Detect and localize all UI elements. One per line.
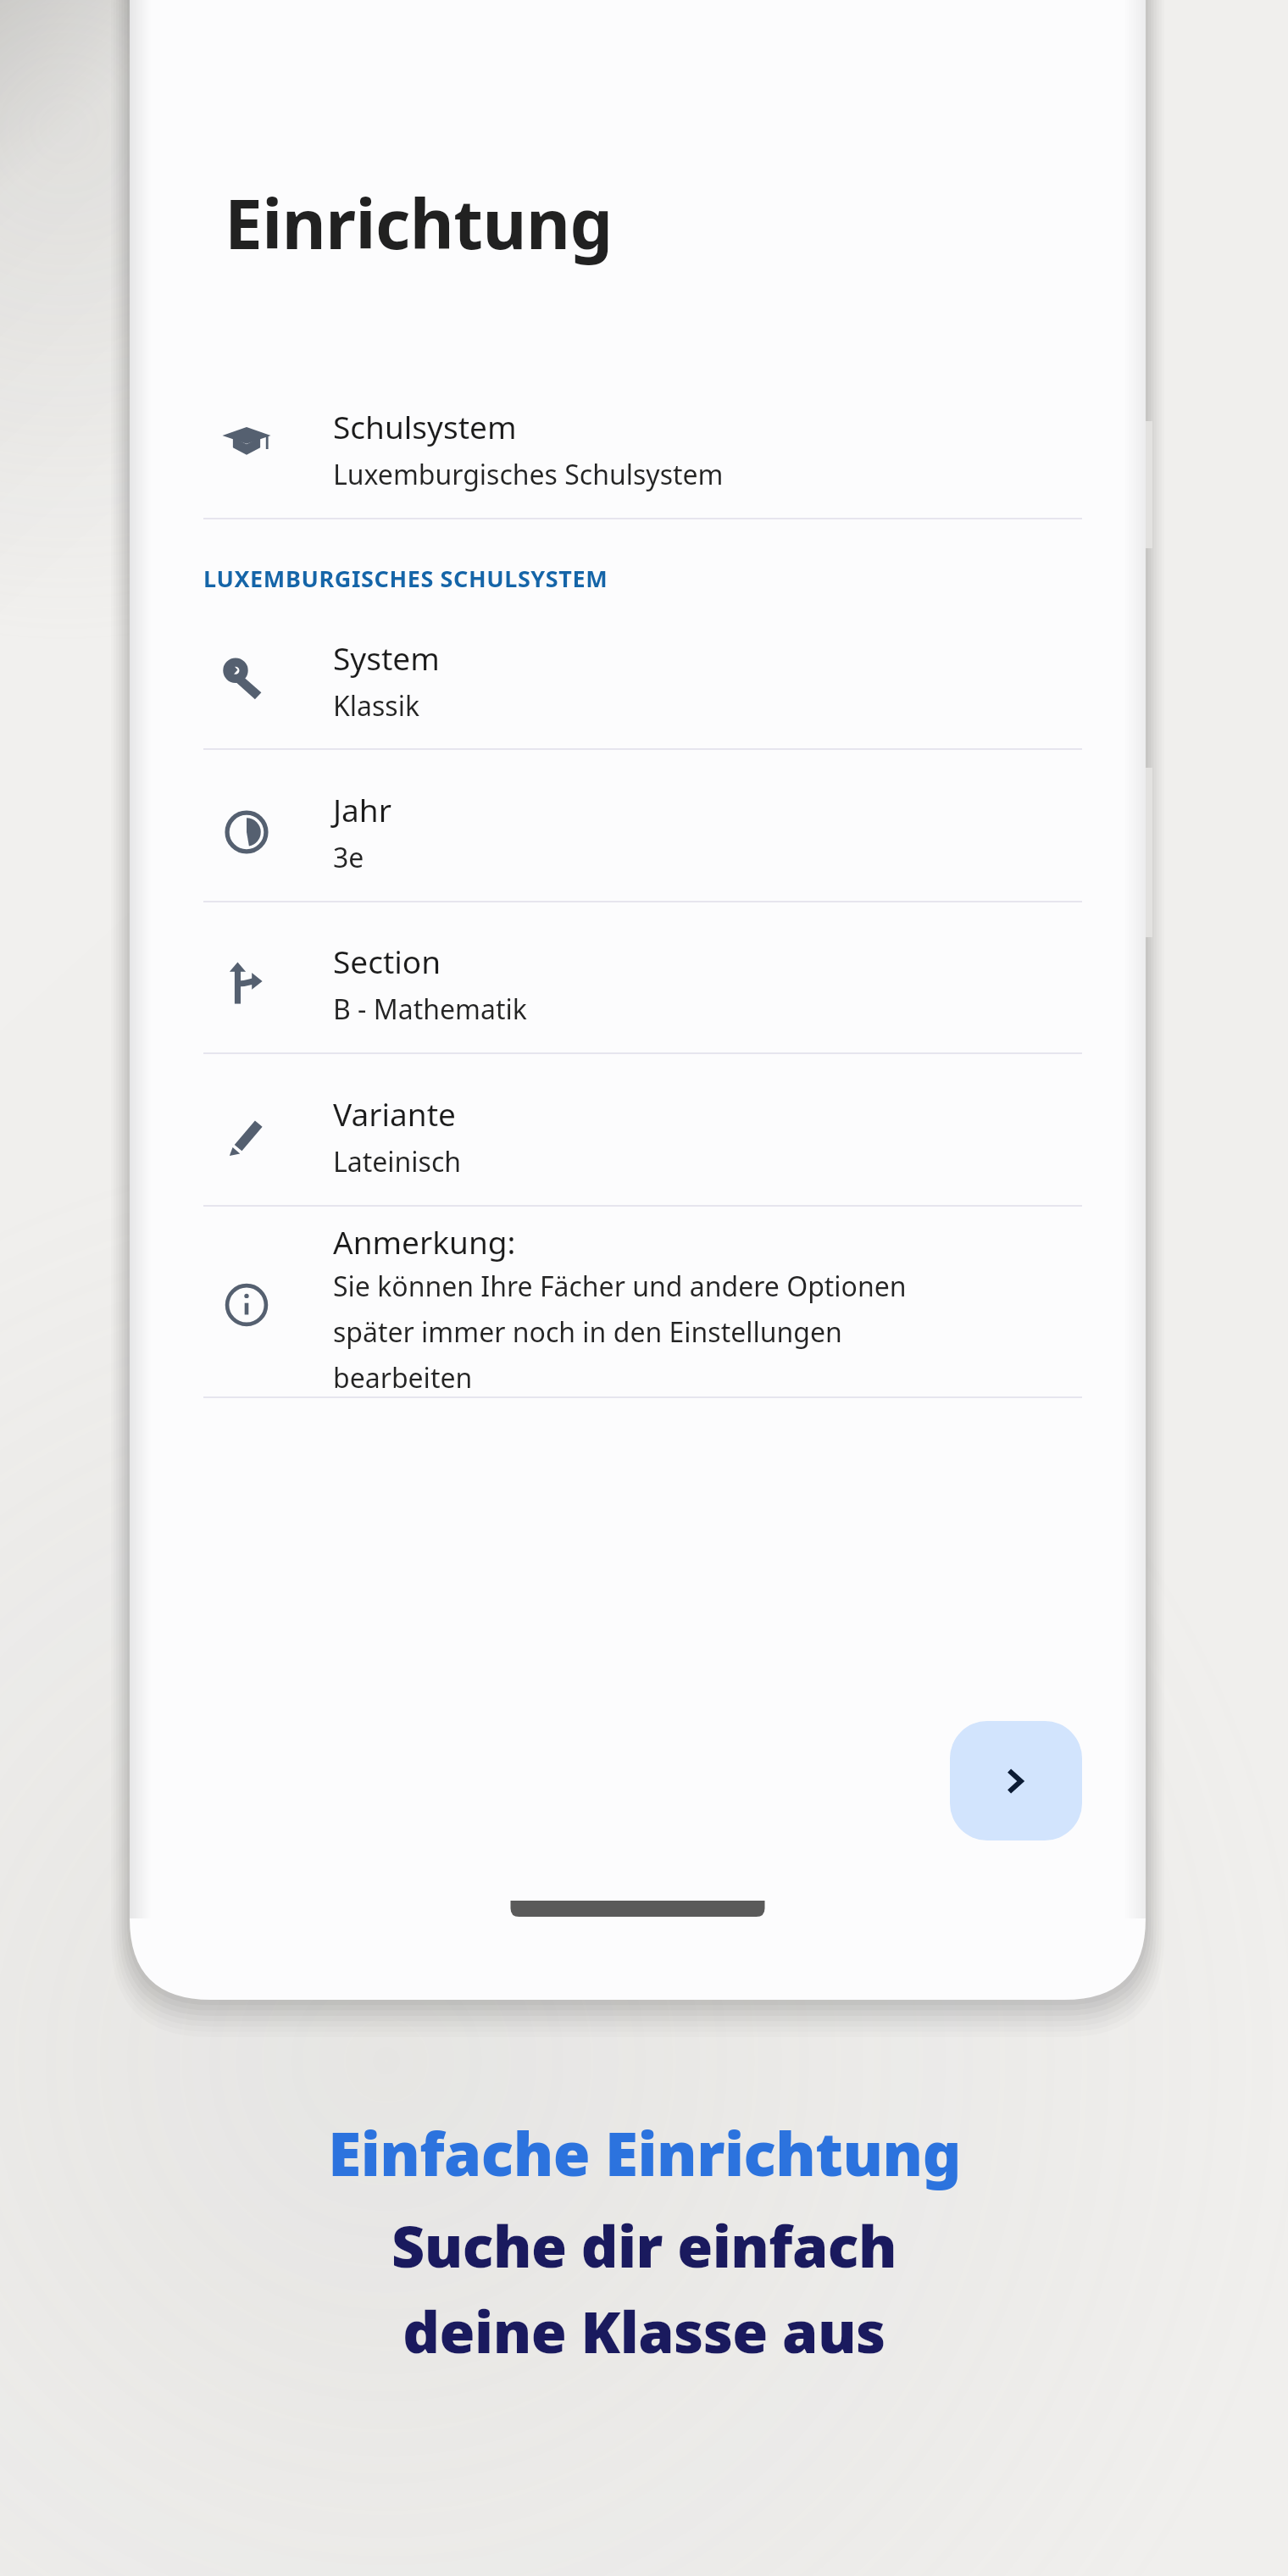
staticText: Variante xyxy=(333,1092,456,1135)
button[interactable]: Anmerkung: xyxy=(203,1220,1082,1390)
staticText: Klassik xyxy=(333,687,420,724)
staticText: LUXEMBURGISCHES SCHULSYSTEM xyxy=(203,563,608,594)
staticText: Schulsystem xyxy=(333,405,517,447)
button[interactable]: Jahr xyxy=(203,769,1082,896)
staticText: Einfache Einrichtung xyxy=(328,2112,961,2194)
button[interactable]: System xyxy=(203,617,1082,744)
staticText: Sie können Ihre Fächer und andere Option… xyxy=(333,1268,907,1305)
staticText: System xyxy=(333,636,440,679)
staticText: B - Mathematik xyxy=(333,991,527,1028)
button[interactable]: Section xyxy=(203,920,1082,1047)
staticText: Section xyxy=(333,940,441,982)
staticText: 3e xyxy=(333,839,364,876)
staticText: Anmerkung: xyxy=(333,1220,516,1263)
staticText: später immer noch in den Einstellungen xyxy=(333,1313,842,1351)
button[interactable]: Schulsystem xyxy=(203,386,1082,513)
staticText: deine Klasse aus xyxy=(402,2291,885,2370)
button[interactable]: Variante xyxy=(203,1073,1082,1200)
button[interactable]: Weiter xyxy=(950,1721,1082,1840)
staticText: Lateinisch xyxy=(333,1143,462,1180)
staticText: Luxemburgisches Schulsystem xyxy=(333,456,724,493)
staticText: Suche dir einfach xyxy=(391,2206,897,2285)
staticText: Jahr xyxy=(333,788,392,830)
staticText: bearbeiten xyxy=(333,1359,473,1390)
staticText: Einrichtung xyxy=(225,176,613,269)
